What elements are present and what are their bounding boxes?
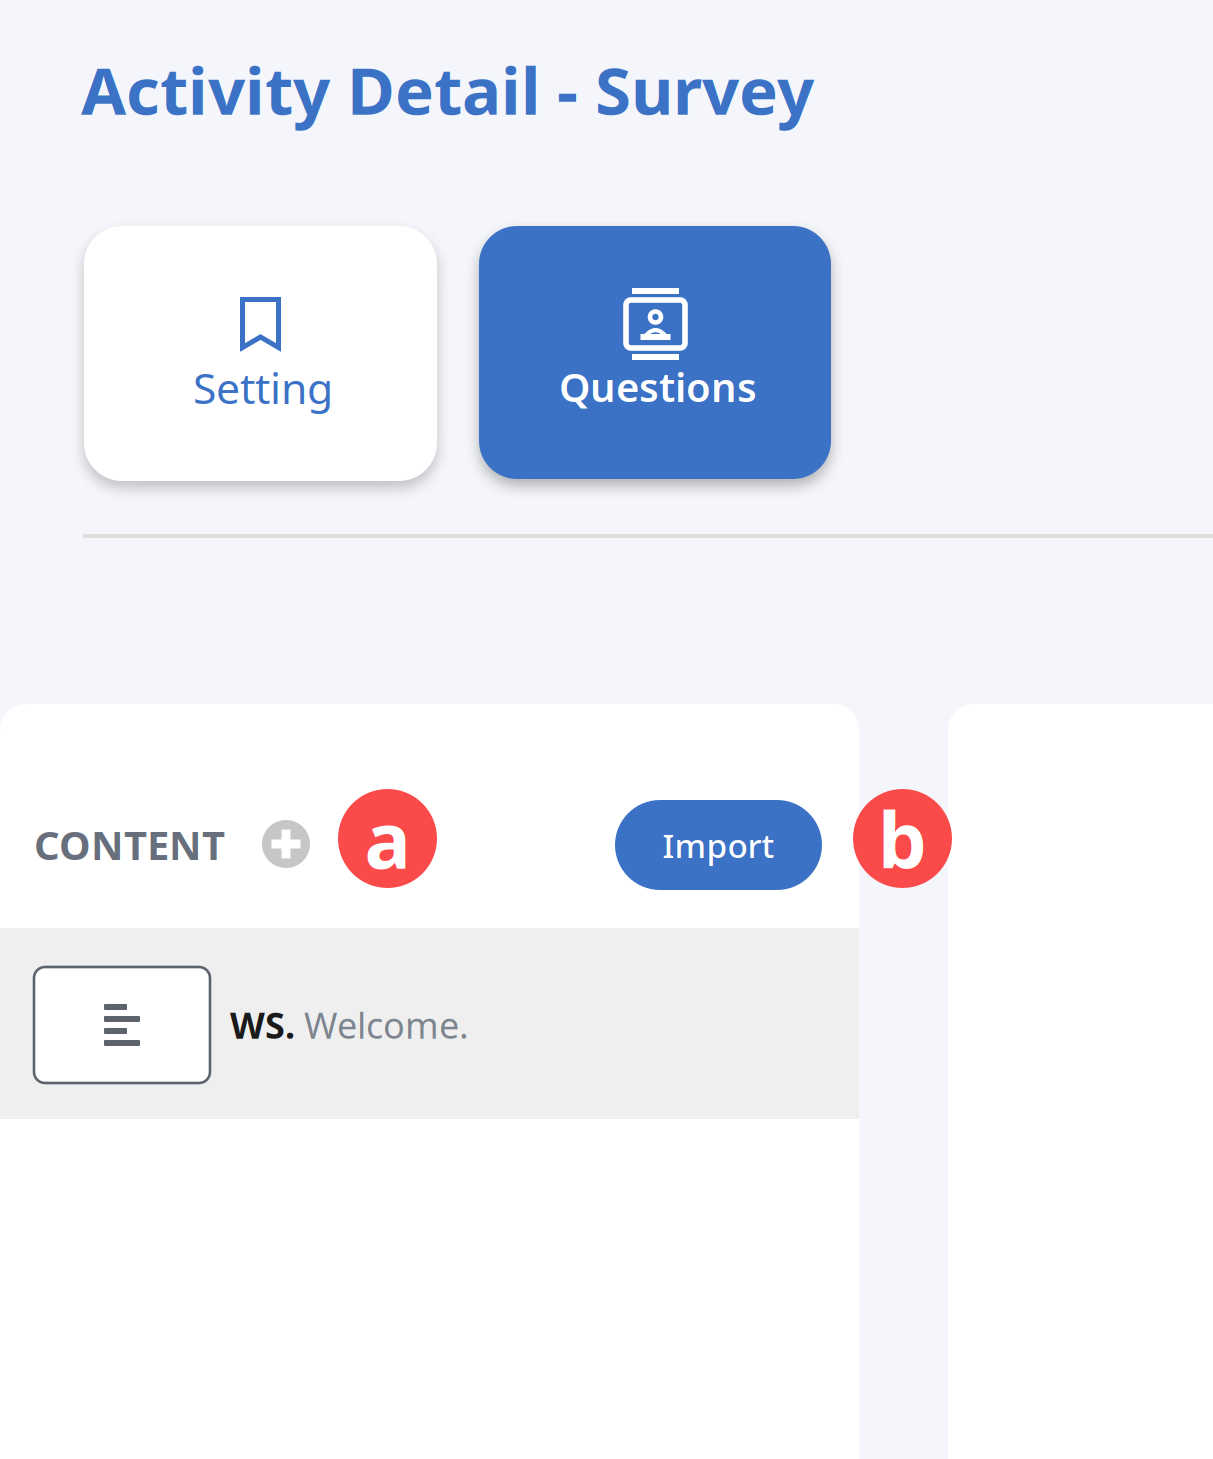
staticText: b [878,787,927,890]
button[interactable]: Import [615,800,822,890]
staticText: CONTENT [34,818,225,871]
staticText: WS. [230,1001,295,1049]
button[interactable]: Add content [262,820,310,868]
staticText: Import [662,823,774,867]
button[interactable]: Setting [84,226,437,481]
button[interactable]: Questions [479,226,831,479]
staticText: a [364,787,410,890]
staticText: Welcome. [295,1001,469,1049]
button[interactable]: WS. [0,928,859,1119]
staticText: Setting [193,359,333,416]
staticText: Questions [559,360,757,413]
staticText: Activity Detail - Survey [81,46,814,133]
